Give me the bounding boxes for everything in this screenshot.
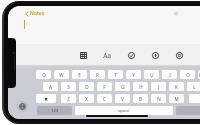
button[interactable]: M [169, 94, 184, 103]
staticText: Y [132, 72, 135, 78]
staticText: E [78, 72, 81, 78]
staticText: U [150, 72, 154, 78]
staticText: Q [42, 72, 46, 78]
button[interactable]: P [198, 70, 200, 79]
button[interactable]: S [61, 82, 76, 91]
button[interactable]: A [43, 82, 58, 91]
staticText: X [85, 96, 88, 102]
button[interactable]: C [97, 94, 112, 103]
staticText: T [114, 72, 117, 78]
button[interactable]: V [115, 94, 130, 103]
staticText: R [96, 72, 99, 78]
button[interactable]: B [133, 94, 148, 103]
button[interactable]: Camera [173, 49, 186, 62]
staticText: B [139, 96, 142, 102]
button[interactable]: Table [77, 49, 90, 62]
button[interactable]: 123 [37, 106, 72, 115]
staticText: space [118, 108, 130, 114]
staticText: N [157, 96, 161, 102]
staticText: S [67, 84, 70, 90]
button[interactable]: Checklist [125, 49, 138, 62]
button[interactable]: Q [36, 70, 51, 79]
button[interactable]: K [169, 82, 184, 91]
button[interactable]: I [162, 70, 177, 79]
staticText: C [103, 96, 106, 102]
staticText: 123 [51, 108, 59, 114]
staticText: Z [67, 96, 70, 102]
button[interactable]: Aa [101, 49, 114, 62]
staticText: J [158, 84, 160, 90]
staticText: A [49, 84, 52, 90]
button[interactable]: G [115, 82, 130, 91]
button[interactable]: T [108, 70, 123, 79]
button[interactable]: O [180, 70, 195, 79]
button[interactable]: R [90, 70, 105, 79]
button[interactable]: Switch keyboard [17, 101, 28, 112]
button[interactable]: Backspace [189, 94, 200, 103]
staticText: I [169, 72, 171, 78]
staticText: Notes [30, 10, 45, 17]
button[interactable]: W [54, 70, 69, 79]
button[interactable]: Shift [36, 94, 56, 103]
staticText: Aa [103, 51, 112, 60]
button[interactable]: X [79, 94, 94, 103]
button[interactable]: F [97, 82, 112, 91]
staticText: K [175, 84, 178, 90]
staticText: W [59, 72, 64, 78]
button[interactable]: Notes [23, 9, 47, 18]
button[interactable]: H [133, 82, 148, 91]
button[interactable]: J [151, 82, 166, 91]
button[interactable]: Markup [149, 49, 162, 62]
button[interactable]: D [79, 82, 94, 91]
button[interactable]: More options [172, 9, 180, 17]
button[interactable]: E [72, 70, 87, 79]
button[interactable]: L [187, 82, 200, 91]
staticText: V [121, 96, 124, 102]
button[interactable]: N [151, 94, 166, 103]
staticText: G [121, 84, 125, 90]
button[interactable]: Z [61, 94, 76, 103]
staticText: D [85, 84, 89, 90]
button[interactable]: U [144, 70, 159, 79]
staticText: H [139, 84, 143, 90]
button[interactable]: space [75, 106, 173, 115]
staticText: O [186, 72, 190, 78]
staticText: P [199, 72, 200, 78]
staticText: F [103, 84, 106, 90]
button[interactable]: Y [126, 70, 141, 79]
staticText: M [174, 96, 179, 102]
staticText: L [193, 84, 196, 90]
